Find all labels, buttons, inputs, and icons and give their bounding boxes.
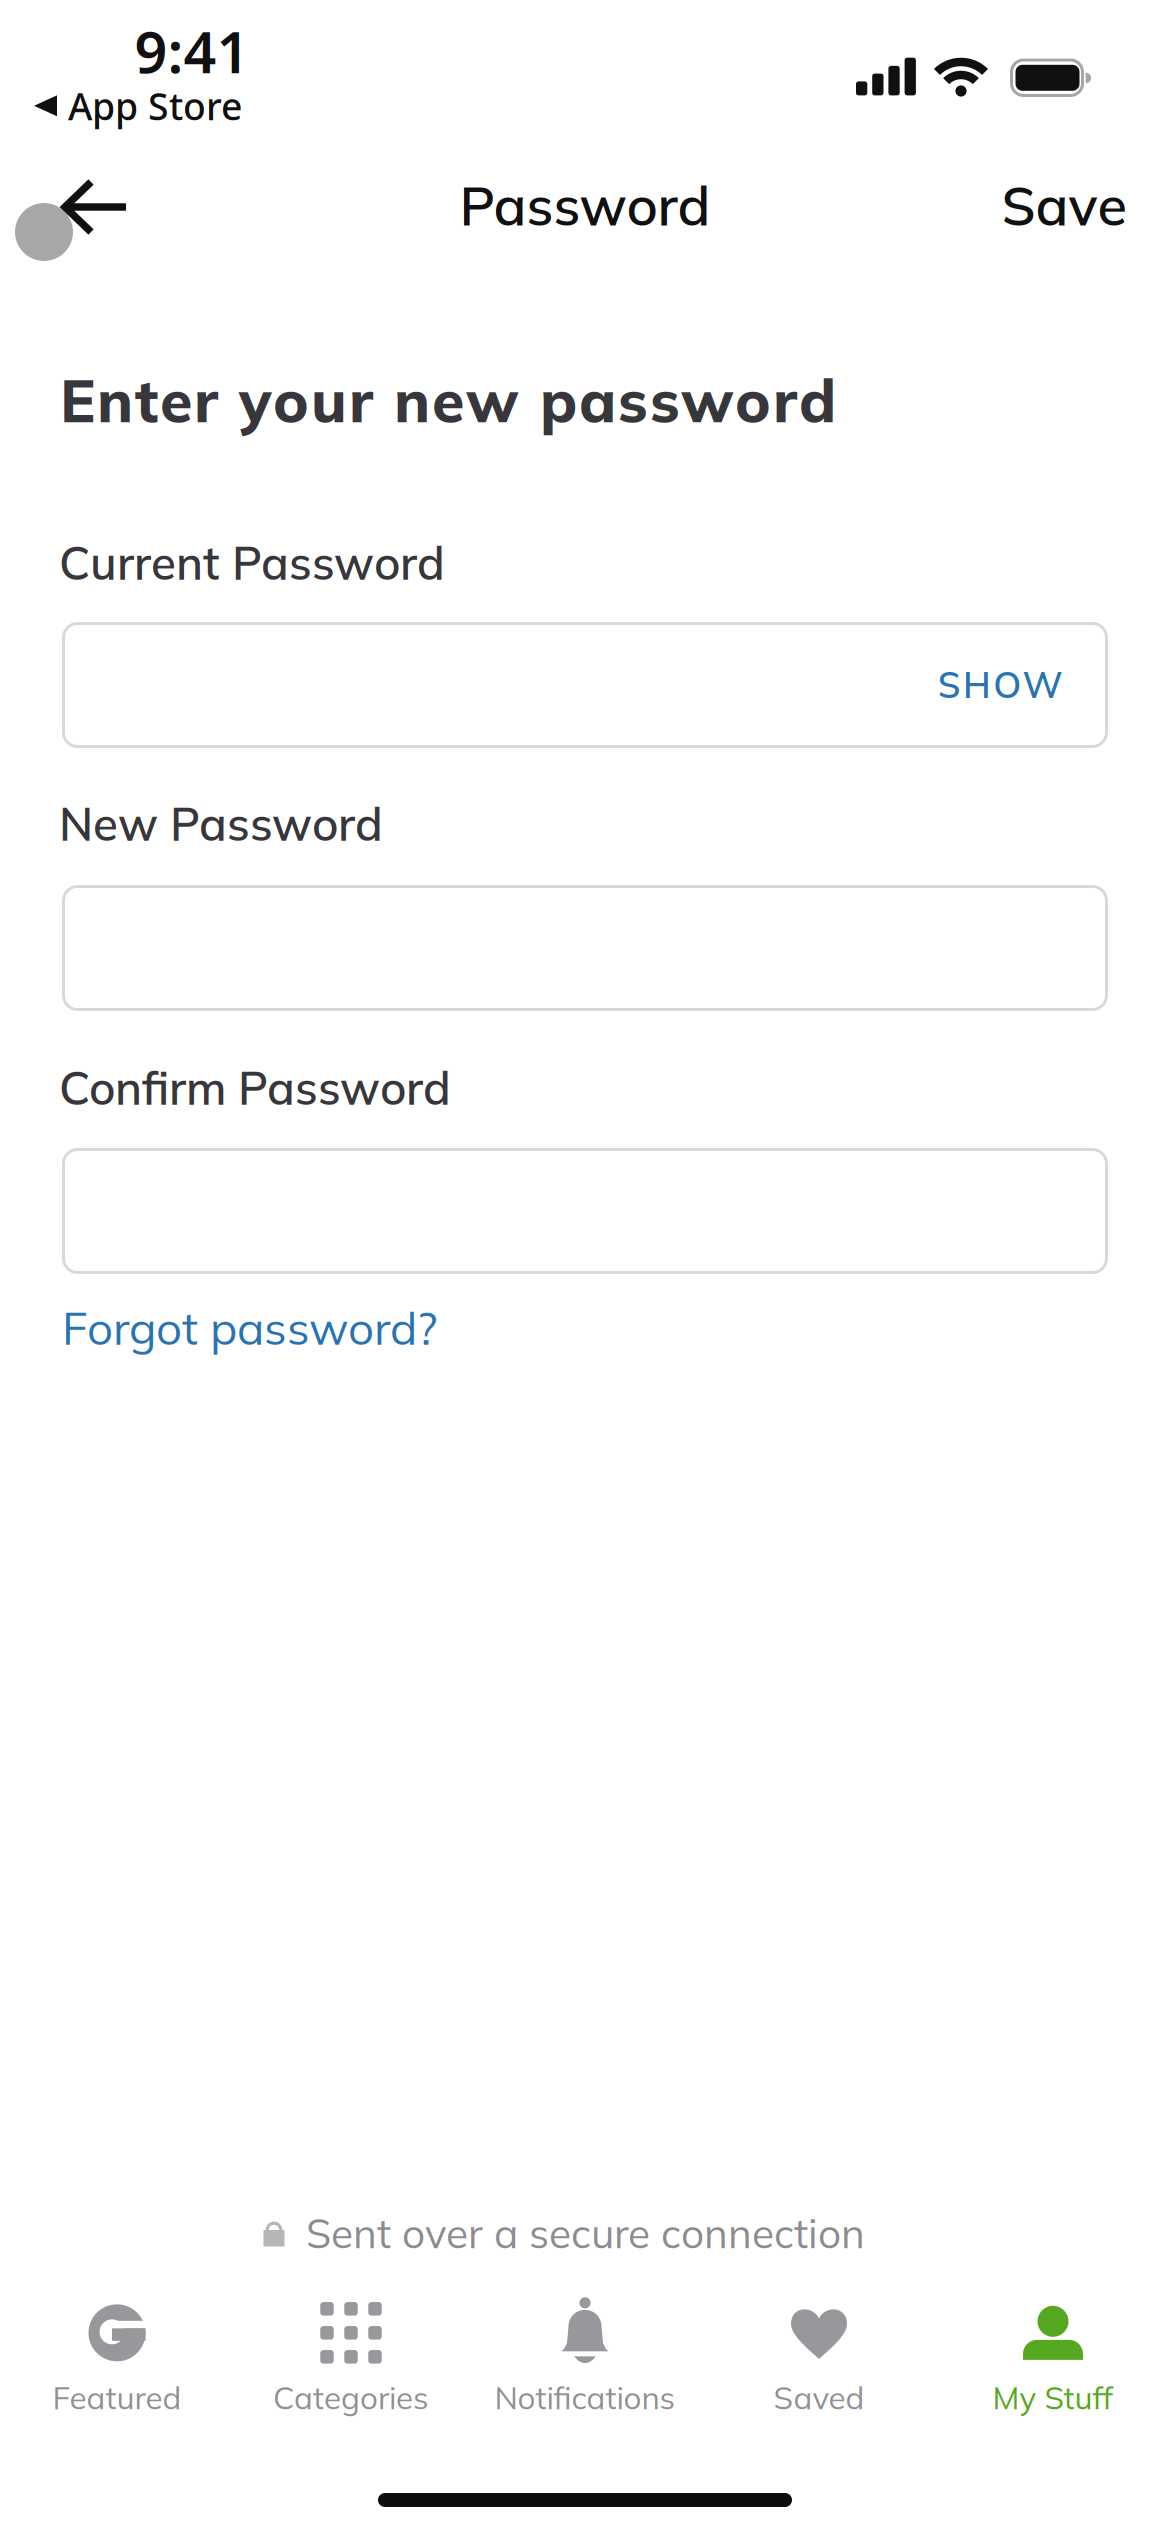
button[interactable]: Featured [0,2281,234,2436]
button[interactable]: Save [1001,171,1126,239]
button[interactable]: Back [60,176,130,238]
button[interactable]: Back to App Store [34,81,242,131]
staticText: Current Password [59,534,445,591]
staticText: My Stuff [992,2378,1113,2417]
button[interactable]: Current Password [62,622,1108,748]
staticText: SHOW [938,662,1062,707]
button[interactable]: Forgot password? [62,1299,437,1356]
staticText: Enter your new password [60,363,836,437]
button[interactable]: My Stuff [936,2281,1170,2436]
staticText: 9:41 [134,13,249,89]
staticText: Save [1001,171,1126,239]
button[interactable]: Saved [702,2281,936,2436]
button[interactable]: SHOW [938,662,1062,707]
staticText: Forgot password? [62,1299,437,1356]
button[interactable]: Categories [234,2281,468,2436]
staticText: Saved [773,2378,864,2417]
staticText: Sent over a secure connection [306,2208,865,2258]
button[interactable]: New Password [62,885,1108,1011]
staticText: Categories [273,2378,429,2417]
staticText: Notifications [494,2378,675,2417]
button[interactable]: Confirm Password [62,1148,1108,1274]
staticText: New Password [59,795,383,852]
staticText: Password [459,171,710,239]
staticText: Confirm Password [59,1059,451,1116]
staticText: Featured [52,2378,181,2417]
button[interactable]: Notifications [468,2281,702,2436]
staticText: App Store [68,81,242,131]
